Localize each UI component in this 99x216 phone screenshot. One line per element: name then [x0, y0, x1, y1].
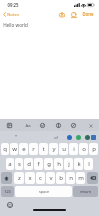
button[interactable]: Aa: [23, 121, 32, 130]
button[interactable]: r: [29, 143, 38, 155]
staticText: x: [28, 174, 32, 182]
staticText: e: [22, 145, 26, 153]
staticText: n: [69, 174, 73, 182]
button[interactable]: App shortcut: [91, 135, 96, 140]
button[interactable]: s: [15, 158, 23, 170]
staticText: r: [32, 145, 35, 153]
staticText: k: [77, 160, 81, 168]
button[interactable]: Emoji keyboard: [5, 200, 14, 209]
staticText: return: [80, 189, 91, 194]
button[interactable]: Done: [80, 9, 96, 19]
button[interactable]: f: [34, 158, 43, 170]
staticText: Hello world: [3, 22, 28, 28]
button[interactable]: i: [69, 143, 78, 155]
button[interactable]: of: [49, 134, 62, 141]
staticText: d: [27, 160, 31, 168]
button[interactable]: u: [59, 143, 68, 155]
staticText: Aa: [25, 123, 31, 129]
button[interactable]: App shortcut: [85, 135, 90, 140]
button[interactable]: return: [73, 186, 98, 197]
staticText: g: [47, 160, 51, 168]
staticText: j: [68, 160, 70, 168]
button[interactable]: l: [84, 158, 93, 170]
button[interactable]: j: [64, 158, 73, 170]
button[interactable]: x: [25, 172, 35, 184]
staticText: u: [62, 145, 66, 153]
button[interactable]: y: [49, 143, 58, 155]
staticText: t: [42, 145, 45, 153]
button[interactable]: n: [66, 172, 75, 184]
button[interactable]: App shortcut: [67, 135, 72, 140]
button[interactable]: Close keyboard: [86, 121, 95, 130]
staticText: 123: [4, 189, 11, 194]
button[interactable]: Table: [54, 121, 63, 130]
button[interactable]: t: [39, 143, 48, 155]
staticText: f: [37, 160, 40, 168]
staticText: y: [52, 145, 56, 153]
button[interactable]: “: [9, 134, 22, 141]
button[interactable]: New note: [69, 10, 78, 19]
staticText: q: [3, 145, 7, 153]
button[interactable]: 123: [1, 186, 14, 197]
button[interactable]: e: [19, 143, 28, 155]
staticText: 09:25: [7, 2, 19, 8]
button[interactable]: g: [44, 158, 53, 170]
staticText: h: [57, 160, 61, 168]
button[interactable]: v: [46, 172, 55, 184]
staticText: p: [92, 145, 96, 153]
button[interactable]: Attach media: [57, 10, 66, 19]
staticText: Done: [82, 11, 94, 17]
staticText: c: [39, 174, 42, 182]
button[interactable]: Backspace: [87, 172, 98, 184]
staticText: v: [49, 174, 53, 182]
staticText: of: [54, 135, 58, 140]
button[interactable]: o: [79, 143, 88, 155]
button[interactable]: space: [15, 186, 72, 197]
staticText: m: [78, 174, 84, 182]
button[interactable]: h: [54, 158, 63, 170]
button[interactable]: w: [10, 143, 18, 155]
staticText: Notes: [7, 11, 19, 17]
button[interactable]: d: [24, 158, 33, 170]
button[interactable]: Markup: [69, 121, 78, 130]
button[interactable]: Notes: [0, 9, 22, 20]
staticText: s: [18, 160, 21, 168]
staticText: “: [15, 134, 17, 141]
button[interactable]: Checklist: [38, 121, 47, 130]
button[interactable]: b: [56, 172, 65, 184]
staticText: w: [12, 145, 17, 153]
button[interactable]: m: [76, 172, 85, 184]
staticText: o: [82, 145, 86, 153]
button[interactable]: z: [14, 172, 24, 184]
button[interactable]: c: [36, 172, 45, 184]
button[interactable]: App shortcut: [76, 135, 81, 140]
button[interactable]: k: [74, 158, 83, 170]
button[interactable]: a: [6, 158, 14, 170]
button[interactable]: q: [1, 143, 9, 155]
staticText: z: [18, 174, 21, 182]
button[interactable]: Attachments: [5, 121, 14, 130]
button[interactable]: Shift: [1, 172, 12, 184]
staticText: b: [59, 174, 63, 182]
staticText: l: [88, 160, 90, 168]
staticText: space: [39, 189, 49, 194]
button[interactable]: p: [89, 143, 98, 155]
staticText: a: [8, 160, 12, 168]
staticText: i: [73, 145, 75, 153]
